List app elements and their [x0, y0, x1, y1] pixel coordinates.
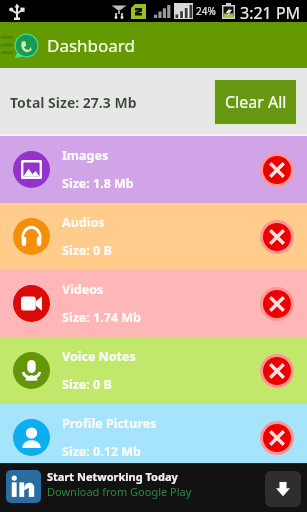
staticText: Videos: [62, 281, 104, 298]
staticText: Total Size: 27.3 Mb: [10, 93, 137, 112]
button[interactable]: Delete Videos: [260, 287, 294, 321]
button[interactable]: Profile Pictures: [0, 404, 307, 471]
staticText: Images: [62, 147, 109, 164]
staticText: Profile Pictures: [62, 415, 157, 432]
staticText: Size: 0.12 Mb: [62, 443, 141, 460]
button[interactable]: Delete Profile Pictures: [260, 421, 294, 455]
staticText: Clear All: [225, 91, 287, 113]
staticText: 24%: [196, 4, 216, 18]
staticText: Dashboard: [47, 34, 136, 57]
button[interactable]: Videos: [0, 270, 307, 337]
button[interactable]: Voice Notes: [0, 337, 307, 404]
button[interactable]: Delete Audios: [260, 220, 294, 254]
staticText: Voice Notes: [62, 348, 136, 365]
button[interactable]: Delete Voice Notes: [260, 354, 294, 388]
button[interactable]: Open navigation menu: [0, 22, 14, 68]
staticText: Size: 1.8 Mb: [62, 175, 134, 192]
staticText: Size: 0 B: [62, 376, 112, 393]
button[interactable]: Start Networking Today: [0, 463, 307, 512]
button[interactable]: Images: [0, 136, 307, 203]
staticText: Start Networking Today: [47, 469, 178, 484]
button[interactable]: Audios: [0, 203, 307, 270]
staticText: Download from Google Play: [47, 484, 192, 499]
staticText: Size: 1.74 Mb: [62, 309, 141, 326]
button[interactable]: Clear All: [215, 80, 296, 124]
button[interactable]: Install app: [265, 471, 301, 507]
staticText: Audios: [62, 214, 105, 231]
button[interactable]: Delete Images: [260, 153, 294, 187]
staticText: Size: 0 B: [62, 242, 112, 259]
staticText: 3:21 PM: [240, 2, 301, 24]
